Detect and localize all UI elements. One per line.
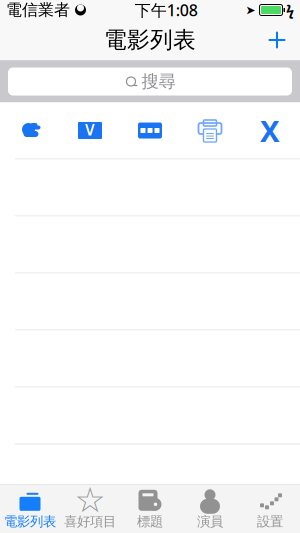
staticText: 標題 xyxy=(137,513,163,530)
staticText: 電信業者 xyxy=(6,0,70,20)
button[interactable]: 標題 xyxy=(120,485,180,533)
button[interactable]: Twitter xyxy=(0,102,60,158)
staticText: 設置 xyxy=(257,513,283,530)
button[interactable]: Mail xyxy=(60,102,120,158)
staticText: ➤ xyxy=(245,3,255,17)
staticText: ∨ xyxy=(82,117,97,140)
staticText: 電影列表 xyxy=(104,26,196,54)
button[interactable]: Close xyxy=(240,102,300,158)
button[interactable]: ☆ xyxy=(60,485,120,533)
button[interactable]: 搜尋 xyxy=(0,60,300,102)
staticText: ϟ xyxy=(286,0,294,20)
button[interactable]: Print xyxy=(180,102,240,158)
staticText: 喜好項目 xyxy=(64,513,116,530)
staticText: 搜尋 xyxy=(141,71,175,92)
staticText: 電影列表 xyxy=(4,513,56,530)
button[interactable]: 設置 xyxy=(240,485,300,533)
button[interactable]: 電影列表 xyxy=(0,485,60,533)
button[interactable]: Add xyxy=(260,23,294,57)
staticText: ☆ xyxy=(74,481,105,520)
staticText: 下午1:08 xyxy=(135,0,198,21)
staticText: X xyxy=(260,111,280,150)
staticText: 演員 xyxy=(197,513,223,530)
button[interactable]: Message xyxy=(120,102,180,158)
button[interactable]: 演員 xyxy=(180,485,240,533)
